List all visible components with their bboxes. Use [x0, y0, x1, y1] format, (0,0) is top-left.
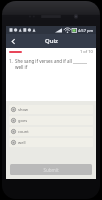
staticText: goes: [18, 118, 28, 123]
staticText: 4:57 pm: [78, 28, 94, 33]
button[interactable]: Submit: [10, 164, 92, 175]
button[interactable]: goes: [9, 116, 93, 125]
staticText: 1.: [9, 58, 13, 64]
button[interactable]: show: [9, 105, 93, 114]
button[interactable]: well: [9, 138, 93, 147]
button[interactable]: count: [9, 127, 93, 136]
staticText: 1 of 10: [80, 49, 93, 54]
staticText: She sang if verses and if all _______ we…: [15, 58, 92, 70]
staticText: count: [18, 129, 29, 134]
staticText: show: [18, 107, 28, 112]
button[interactable]: Back: [6, 34, 20, 48]
staticText: Submit: [43, 167, 59, 173]
staticText: well: [18, 140, 26, 145]
staticText: Quiz: [45, 37, 58, 45]
